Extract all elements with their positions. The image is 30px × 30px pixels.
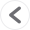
button[interactable]: Back — [0, 0, 30, 30]
